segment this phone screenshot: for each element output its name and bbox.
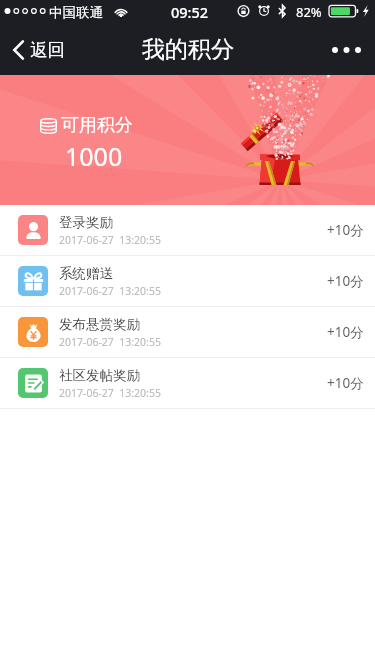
staticText: 09:52 <box>171 2 209 22</box>
staticText: 2017-06-27 13:20:55 <box>59 284 161 298</box>
staticText: 系统赠送 <box>59 265 113 282</box>
staticText: +10分 <box>327 272 364 290</box>
staticText: 可用积分 <box>61 114 133 137</box>
staticText: +10分 <box>327 374 364 392</box>
staticText: 82% <box>296 3 322 21</box>
staticText: 返回 <box>30 39 65 61</box>
staticText: 2017-06-27 13:20:55 <box>59 335 161 349</box>
staticText: 1000 <box>65 139 123 173</box>
button[interactable]: 登录奖励 <box>0 205 375 255</box>
staticText: 登录奖励 <box>59 214 113 231</box>
staticText: 社区发帖奖励 <box>59 367 140 384</box>
staticText: +10分 <box>327 221 364 239</box>
staticText: 2017-06-27 13:20:55 <box>59 233 161 247</box>
button[interactable]: More options <box>318 31 375 69</box>
button[interactable]: 返回 <box>0 31 77 69</box>
staticText: 中国联通 <box>49 4 103 21</box>
button[interactable]: 系统赠送 <box>0 256 375 306</box>
staticText: +10分 <box>327 323 364 341</box>
staticText: 我的积分 <box>142 35 234 64</box>
staticText: 发布悬赏奖励 <box>59 316 140 333</box>
button[interactable]: 发布悬赏奖励 <box>0 307 375 357</box>
button[interactable]: 社区发帖奖励 <box>0 358 375 408</box>
staticText: 2017-06-27 13:20:55 <box>59 386 161 400</box>
